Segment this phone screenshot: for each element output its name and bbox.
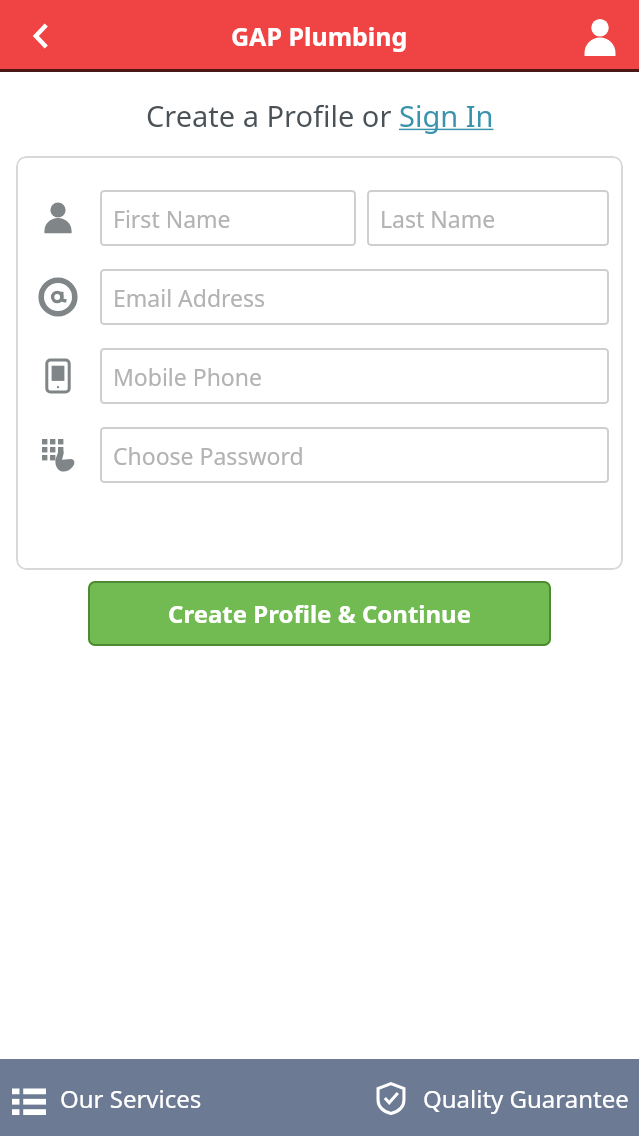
staticText: First Name bbox=[113, 203, 231, 234]
staticText: Choose Password bbox=[113, 440, 304, 471]
button[interactable]: Last Name bbox=[367, 190, 609, 246]
staticText: Email Address bbox=[113, 282, 266, 313]
staticText: Mobile Phone bbox=[113, 361, 262, 392]
button[interactable]: Email Address bbox=[100, 269, 609, 325]
button[interactable]: Sign In bbox=[399, 96, 494, 135]
button[interactable]: Account bbox=[575, 11, 625, 61]
button[interactable]: Back bbox=[14, 10, 66, 62]
button[interactable]: Quality Guarantee bbox=[319, 1080, 639, 1116]
staticText: Create Profile & Continue bbox=[168, 597, 472, 630]
button[interactable]: First Name bbox=[100, 190, 356, 246]
button[interactable]: Choose Password bbox=[100, 427, 609, 483]
button[interactable]: Create Profile & Continue bbox=[88, 581, 551, 646]
button[interactable]: Mobile Phone bbox=[100, 348, 609, 404]
staticText: Quality Guarantee bbox=[423, 1082, 629, 1115]
staticText: Our Services bbox=[60, 1082, 202, 1115]
staticText: Last Name bbox=[380, 203, 496, 234]
staticText: GAP Plumbing bbox=[231, 19, 408, 53]
staticText: Create a Profile or bbox=[146, 96, 399, 135]
staticText: Sign In bbox=[399, 96, 494, 135]
button[interactable]: Our Services bbox=[0, 1081, 319, 1115]
